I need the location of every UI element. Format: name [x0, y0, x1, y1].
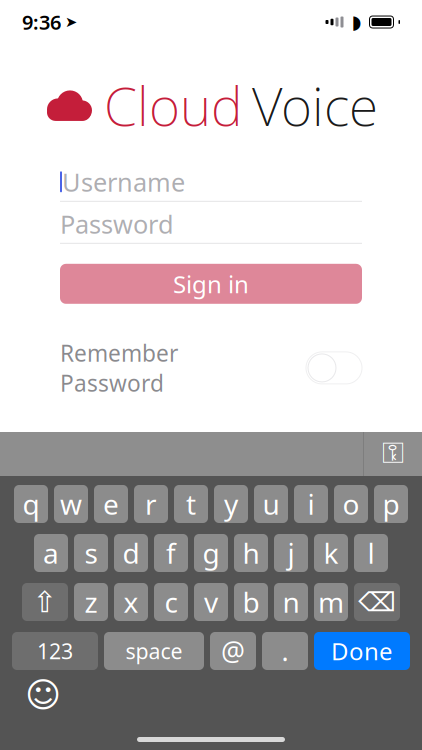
staticText: . — [281, 633, 288, 669]
staticText: b — [242, 583, 259, 621]
button[interactable]: o — [334, 485, 368, 523]
staticText: ➤ — [65, 14, 77, 30]
button[interactable]: y — [214, 485, 248, 523]
staticText: u — [262, 485, 279, 523]
staticText: @ — [221, 633, 245, 669]
staticText: ⌫ — [358, 587, 396, 617]
button[interactable]: k — [314, 534, 348, 572]
staticText: 9:36 — [22, 9, 61, 35]
button[interactable]: Shift — [22, 583, 68, 621]
button[interactable]: v — [194, 583, 228, 621]
staticText: v — [204, 583, 218, 621]
button[interactable]: a — [34, 534, 68, 572]
staticText: Voice — [252, 70, 378, 141]
button[interactable]: g — [194, 534, 228, 572]
staticText: a — [43, 534, 59, 572]
staticText: Done — [331, 635, 393, 667]
staticText: e — [103, 485, 119, 523]
staticText: p — [382, 485, 399, 523]
staticText: c — [164, 583, 177, 621]
button[interactable]: Username — [60, 163, 362, 202]
staticText: j — [287, 534, 294, 572]
staticText: y — [224, 485, 238, 523]
staticText: r — [145, 485, 157, 523]
button[interactable]: d — [114, 534, 148, 572]
staticText: k — [323, 534, 338, 572]
staticText: ⇧ — [32, 585, 57, 619]
button[interactable]: w — [54, 485, 88, 523]
staticText: x — [123, 583, 138, 621]
staticText: ⚿ — [382, 440, 404, 468]
staticText: ☺ — [25, 675, 61, 715]
button[interactable]: z — [74, 583, 108, 621]
staticText: s — [84, 534, 97, 572]
button[interactable]: Password — [60, 205, 362, 244]
button[interactable]: Sign in — [60, 264, 362, 304]
staticText: w — [60, 485, 82, 523]
staticText: ◗ — [351, 11, 361, 33]
staticText: space — [125, 637, 182, 665]
button[interactable]: Remember Password — [306, 352, 362, 384]
staticText: h — [242, 534, 259, 572]
button[interactable]: l — [354, 534, 388, 572]
button[interactable]: i — [294, 485, 328, 523]
staticText: t — [186, 485, 196, 523]
button[interactable]: Delete — [354, 583, 400, 621]
button[interactable]: h — [234, 534, 268, 572]
staticText: n — [282, 583, 299, 621]
staticText: Remember Password — [60, 338, 178, 398]
button[interactable]: c — [154, 583, 188, 621]
button[interactable]: m — [314, 583, 348, 621]
button[interactable]: r — [134, 485, 168, 523]
button[interactable]: u — [254, 485, 288, 523]
staticText: q — [22, 485, 39, 523]
staticText: Password — [60, 207, 174, 241]
staticText: Username — [62, 165, 185, 199]
staticText: g — [202, 534, 219, 572]
staticText: Sign in — [173, 268, 249, 300]
button[interactable]: @ — [210, 632, 256, 670]
button[interactable]: j — [274, 534, 308, 572]
button[interactable]: b — [234, 583, 268, 621]
button[interactable]: 123 — [12, 632, 98, 670]
button[interactable]: p — [374, 485, 408, 523]
staticText: o — [342, 485, 359, 523]
button[interactable]: . — [262, 632, 308, 670]
button[interactable]: Passwords — [364, 432, 422, 476]
button[interactable]: x — [114, 583, 148, 621]
staticText: m — [318, 583, 344, 621]
staticText: z — [84, 583, 97, 621]
staticText: 123 — [37, 637, 73, 665]
staticText: i — [307, 485, 314, 523]
button[interactable]: s — [74, 534, 108, 572]
staticText: d — [122, 534, 139, 572]
button[interactable]: f — [154, 534, 188, 572]
button[interactable]: t — [174, 485, 208, 523]
button[interactable]: n — [274, 583, 308, 621]
button[interactable]: q — [14, 485, 48, 523]
staticText: l — [367, 534, 374, 572]
button[interactable]: space — [104, 632, 204, 670]
staticText: f — [166, 534, 176, 572]
staticText: Cloud — [104, 70, 242, 141]
button[interactable]: e — [94, 485, 128, 523]
button[interactable]: Emoji — [26, 678, 60, 712]
button[interactable]: Done — [314, 632, 410, 670]
